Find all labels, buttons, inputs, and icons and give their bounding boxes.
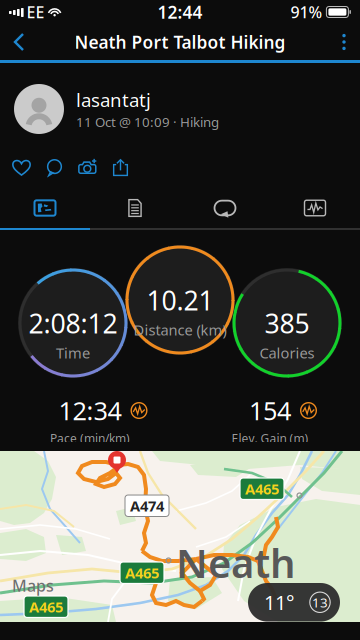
button[interactable]: Comment bbox=[38, 147, 71, 188]
staticText: Neath bbox=[176, 536, 296, 589]
staticText: A465 bbox=[245, 479, 279, 498]
staticText: 11 Oct @ 10:09 · Hiking bbox=[76, 113, 219, 131]
staticText: 13 bbox=[312, 593, 328, 611]
staticText: A465 bbox=[125, 563, 159, 582]
staticText: A465 bbox=[29, 597, 63, 616]
staticText: 154 bbox=[249, 394, 291, 427]
staticText: Time bbox=[56, 343, 90, 362]
staticText: 10.21 bbox=[146, 283, 213, 318]
staticText: Pace (min/km) bbox=[50, 430, 130, 446]
button[interactable]: Details bbox=[90, 188, 180, 228]
staticText: 385 bbox=[264, 306, 309, 341]
staticText: 2:08:12 bbox=[28, 306, 117, 341]
button[interactable]: Map bbox=[0, 188, 90, 228]
staticText: 91% bbox=[290, 1, 322, 23]
staticText: Calories bbox=[259, 343, 314, 362]
staticText: Distance (km) bbox=[133, 320, 226, 339]
button[interactable]: Charts bbox=[270, 188, 360, 228]
staticText: Elev. Gain (m) bbox=[231, 430, 308, 446]
button[interactable]: Weather, 11 degrees bbox=[248, 583, 340, 622]
button[interactable]: Like bbox=[5, 147, 38, 188]
staticText: A474 bbox=[130, 496, 164, 515]
staticText: EE bbox=[27, 1, 45, 23]
staticText: 11° bbox=[264, 589, 295, 616]
button[interactable]: More options bbox=[328, 24, 360, 60]
button[interactable]: Share bbox=[104, 147, 137, 188]
button[interactable]: Back bbox=[0, 24, 40, 60]
button[interactable]: Laps bbox=[180, 188, 270, 228]
staticText: 12:34 bbox=[58, 394, 121, 427]
staticText: Neath Port Talbot Hiking bbox=[74, 30, 285, 53]
staticText: lasantatj bbox=[76, 87, 151, 112]
staticText: 12:44 bbox=[157, 0, 202, 23]
staticText: Maps bbox=[12, 575, 54, 596]
button[interactable]: Add photo bbox=[71, 147, 104, 188]
